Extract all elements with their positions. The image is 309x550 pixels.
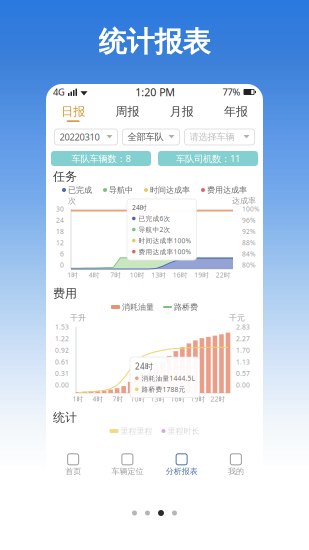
staticText: 车队司机数：11 [176, 152, 240, 165]
staticText: 1.13 [236, 357, 250, 366]
staticText: 达成率 [232, 196, 256, 206]
staticText: 96% [242, 216, 256, 225]
button[interactable]: 全部车队 [122, 129, 179, 145]
staticText: 时间达成率100% [139, 236, 192, 245]
staticText: 月报 [170, 104, 194, 119]
staticText: 日报 [61, 104, 85, 119]
staticText: 10时 [130, 394, 145, 403]
staticText: 13时 [150, 394, 165, 403]
staticText: 7时 [112, 394, 123, 403]
button[interactable]: 日报 [46, 104, 100, 122]
staticText: 0.00 [236, 381, 250, 389]
staticText: 导航中 [109, 185, 133, 195]
staticText: 10时 [130, 270, 145, 279]
staticText: 22时 [216, 270, 231, 279]
staticText: 消耗油量 [122, 302, 154, 312]
staticText: 时间达成率 [150, 185, 190, 195]
staticText: 首页 [65, 466, 81, 476]
staticText: 费用达成率100% [139, 247, 192, 256]
staticText: 1时 [72, 394, 83, 403]
staticText: 13时 [151, 270, 166, 279]
button[interactable]: 20220310 [54, 129, 117, 145]
staticText: 1时 [67, 270, 78, 279]
staticText: 100% [242, 205, 260, 213]
staticText: 7时 [110, 270, 121, 279]
button[interactable]: 首页 [46, 454, 100, 476]
staticText: 任务 [53, 169, 77, 184]
staticText: 千升 [70, 313, 86, 323]
staticText: 费用 [53, 286, 77, 301]
staticText: 1.22 [55, 334, 69, 343]
button[interactable]: 月报 [154, 104, 209, 122]
staticText: 车队车辆数：8 [71, 152, 130, 165]
staticText: 费用达成率 [207, 185, 247, 195]
staticText: 2.27 [236, 334, 250, 343]
staticText: 0.31 [55, 369, 69, 378]
staticText: 已完成 [68, 185, 92, 195]
staticText: 4时 [92, 394, 103, 403]
staticText: 20220310 [59, 131, 99, 143]
staticText: 24时 [135, 361, 153, 372]
staticText: 16时 [173, 270, 188, 279]
staticText: 里程时长 [167, 426, 199, 436]
button[interactable]: 分析报表 [154, 454, 209, 476]
staticText: 4时 [89, 270, 100, 279]
staticText: 22时 [210, 394, 225, 403]
button[interactable]: 车辆定位 [100, 454, 154, 476]
button[interactable]: 年报 [209, 104, 263, 122]
staticText: 路桥费1788元 [142, 385, 186, 394]
staticText: 请选择车辆 [189, 131, 234, 143]
button[interactable]: 请选择车辆 [184, 129, 254, 145]
staticText: 12 [56, 238, 64, 247]
staticText: 24时 [132, 203, 147, 212]
staticText: 92% [242, 227, 256, 236]
button[interactable]: 周报 [100, 104, 154, 122]
staticText: 全部车队 [127, 131, 163, 143]
staticText: 分析报表 [166, 466, 198, 476]
staticText: 77% [222, 86, 240, 98]
button[interactable]: 我的 [209, 454, 263, 476]
staticText: 6 [60, 249, 64, 258]
staticText: 0.61 [55, 357, 69, 366]
staticText: 4G [53, 86, 65, 98]
staticText: 车辆定位 [111, 466, 143, 476]
staticText: 1.53 [55, 323, 69, 331]
staticText: 里程里程 [120, 426, 152, 436]
staticText: 30 [56, 205, 64, 213]
staticText: 路桥费 [174, 302, 198, 312]
staticText: 0 [60, 261, 64, 269]
staticText: 88% [242, 238, 256, 247]
staticText: 0.00 [55, 381, 69, 389]
staticText: 我的 [228, 466, 244, 476]
staticText: 1.70 [236, 346, 250, 355]
staticText: 0.57 [236, 369, 250, 378]
staticText: 19时 [194, 270, 209, 279]
staticText: 导航中2次 [139, 225, 171, 234]
staticText: 周报 [115, 104, 139, 119]
staticText: 2.83 [236, 323, 250, 331]
staticText: 千元 [229, 313, 245, 323]
staticText: 19时 [190, 394, 205, 403]
staticText: 年报 [224, 104, 248, 119]
staticText: 24 [56, 216, 64, 225]
staticText: 0.92 [55, 346, 69, 355]
staticText: 18 [56, 227, 64, 236]
staticText: 已完成6次 [139, 214, 171, 223]
staticText: 统计报表 [98, 25, 210, 59]
staticText: 统计 [53, 410, 77, 425]
staticText: 消耗油量1444.5L [142, 374, 195, 383]
staticText: 80% [242, 261, 256, 269]
staticText: 16时 [170, 394, 185, 403]
staticText: 1:20 PM [135, 85, 175, 99]
staticText: 次 [68, 196, 76, 206]
staticText: 84% [242, 249, 256, 258]
